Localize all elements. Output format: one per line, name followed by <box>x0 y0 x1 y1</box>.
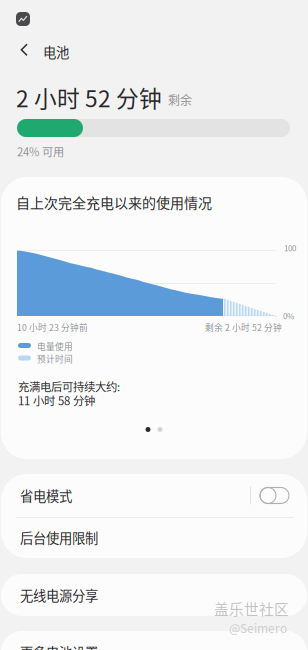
staticText: 100 <box>284 242 296 254</box>
button[interactable]: 更多电池设置 <box>1 631 307 650</box>
staticText: 2 小时 52 分钟 <box>16 81 162 114</box>
staticText: 24% 可用 <box>17 143 64 159</box>
staticText: 盖乐世社区 <box>214 598 289 619</box>
button[interactable]: 无线电源分享 <box>1 574 307 616</box>
staticText: 省电模式 <box>20 486 72 505</box>
staticText: 预计时间 <box>37 352 73 365</box>
staticText: 电量使用 <box>37 340 73 352</box>
staticText: 10 小时 23 分钟前 <box>17 321 88 333</box>
staticText: 自上次完全充电以来的使用情况 <box>16 192 212 212</box>
staticText: 无线电源分享 <box>20 585 98 605</box>
button[interactable]: 省电模式 <box>1 474 307 517</box>
button[interactable]: 后台使用限制 <box>1 517 307 558</box>
staticText: @Seimero <box>229 619 287 636</box>
button[interactable]: 返回 <box>10 33 38 67</box>
staticText: 剩余 2 小时 52 分钟 <box>205 321 282 333</box>
staticText: 更多电池设置 <box>20 642 98 650</box>
staticText: 充满电后可持续大约: <box>18 378 120 394</box>
staticText: 电池 <box>43 42 69 61</box>
staticText: 后台使用限制 <box>20 528 98 547</box>
staticText: 0% <box>283 310 294 322</box>
staticText: 剩余 <box>168 91 192 108</box>
staticText: 11 小时 58 分钟 <box>18 392 95 408</box>
